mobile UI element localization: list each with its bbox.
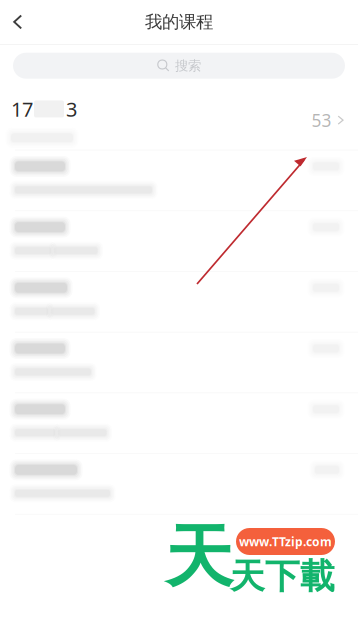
button[interactable]: 17 [0, 79, 358, 150]
button[interactable] [0, 454, 358, 515]
button[interactable] [0, 393, 358, 454]
button[interactable] [0, 332, 358, 393]
staticText: 天下載 [230, 555, 335, 598]
button[interactable] [0, 211, 358, 272]
staticText: 搜索 [175, 57, 201, 74]
button[interactable]: Back [0, 0, 55, 44]
button[interactable]: 搜索 [13, 53, 345, 79]
staticText: www.TTzip.com [239, 533, 332, 549]
button[interactable] [0, 150, 358, 211]
button[interactable] [0, 272, 358, 332]
staticText: 53 [311, 109, 331, 132]
staticText: 我的课程 [145, 11, 213, 33]
staticText: 17 [11, 96, 33, 122]
staticText: 天 [165, 515, 233, 599]
staticText: 3 [66, 96, 77, 122]
